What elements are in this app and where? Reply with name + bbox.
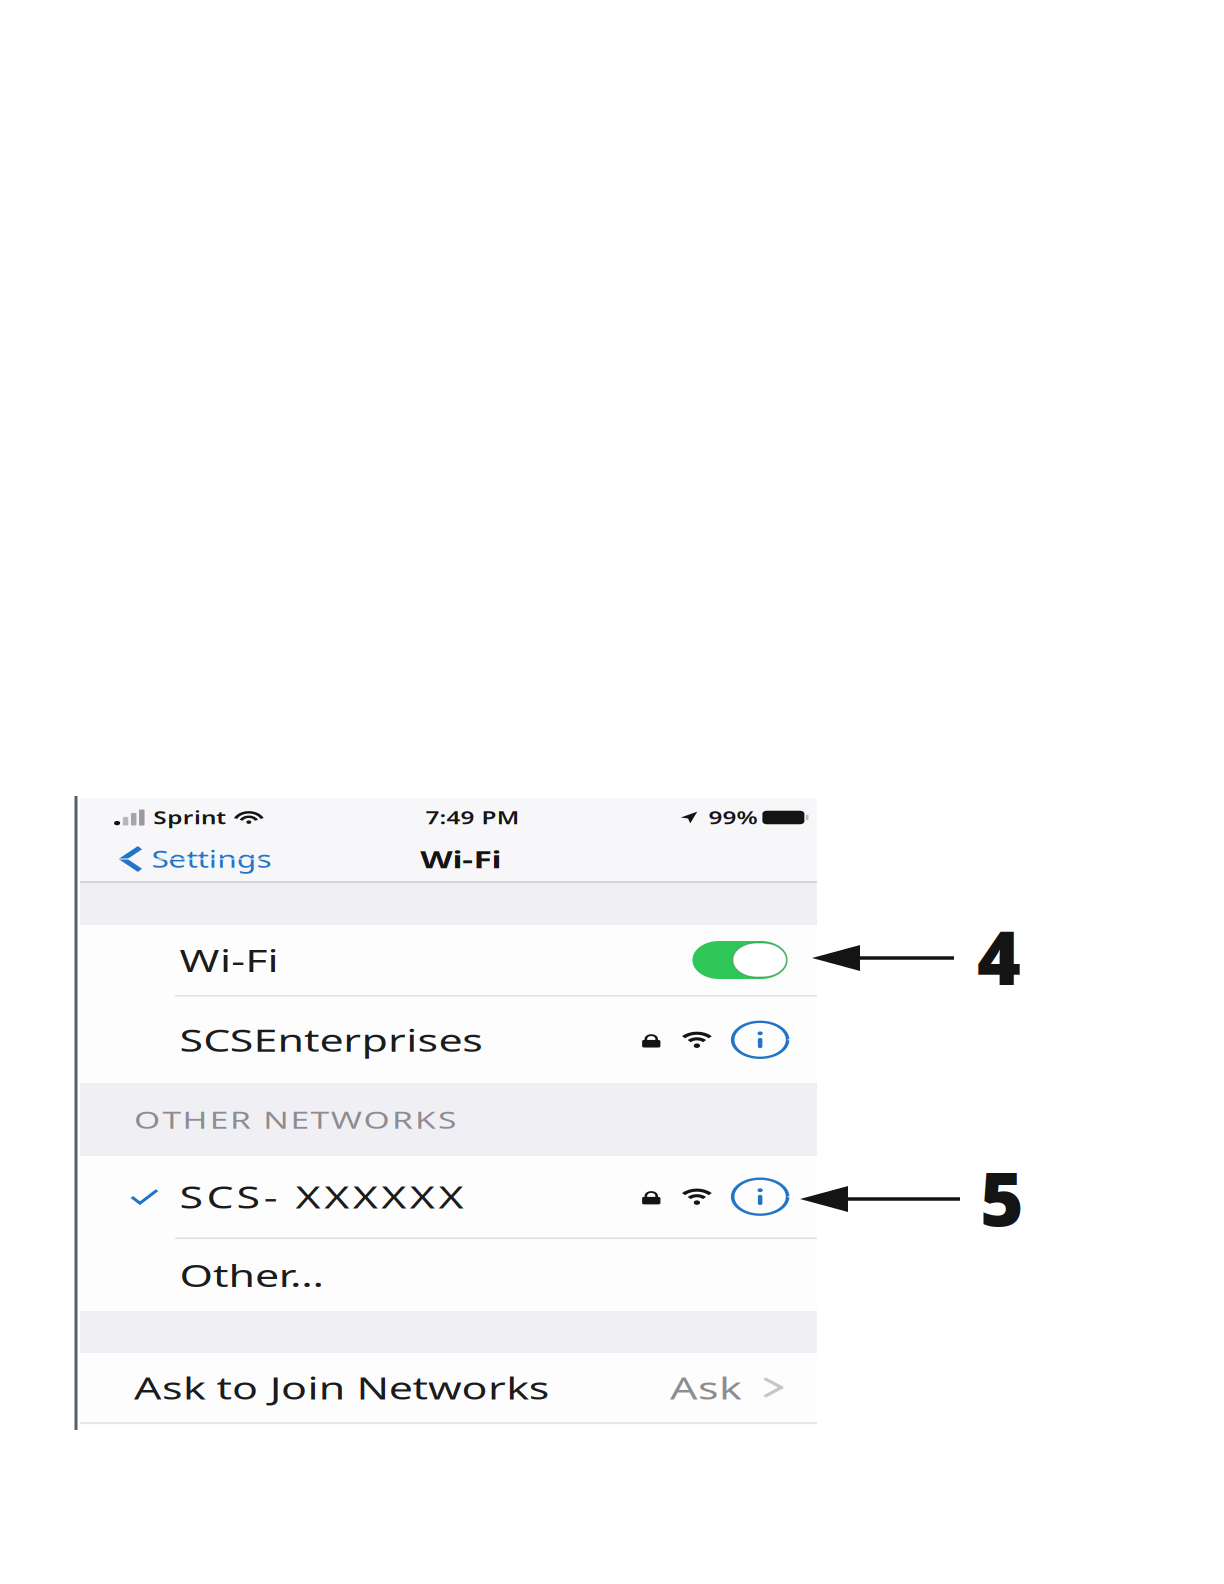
staticText: Sprint: [132, 806, 184, 829]
staticText: R: [187, 1104, 202, 1135]
staticText: p: [281, 1019, 300, 1060]
staticText: T: [139, 1104, 152, 1135]
staticText: i: [313, 1019, 321, 1060]
staticText: 4: [977, 906, 1021, 1006]
staticText: 5: [980, 1147, 1024, 1247]
staticText: X: [295, 1176, 313, 1217]
staticText: [203, 1104, 209, 1135]
staticText: X: [254, 1176, 272, 1217]
staticText: E: [173, 1104, 186, 1135]
button[interactable]: S: [80, 1156, 606, 1237]
button[interactable]: Other...: [80, 1239, 606, 1311]
staticText: r: [300, 1019, 313, 1060]
staticText: N: [211, 1104, 229, 1135]
staticText: O: [118, 1104, 137, 1135]
staticText: r: [268, 1019, 281, 1060]
staticText: S: [187, 1019, 204, 1060]
staticText: T: [245, 1104, 258, 1135]
button[interactable]: Settings: [80, 837, 223, 881]
staticText: Ask to Join Networks: [118, 1367, 415, 1408]
staticText: Settings: [131, 844, 217, 874]
staticText: X: [234, 1176, 252, 1217]
staticText: s: [353, 1019, 368, 1060]
staticText: t: [240, 1019, 251, 1060]
staticText: C: [168, 1019, 187, 1060]
staticText: e: [251, 1019, 268, 1060]
staticText: K: [319, 1104, 334, 1135]
staticText: Other...: [151, 1255, 254, 1295]
staticText: R: [303, 1104, 318, 1135]
staticText: H: [153, 1104, 171, 1135]
staticText: X: [336, 1176, 354, 1217]
staticText: s: [321, 1019, 336, 1060]
button[interactable]: Wi-Fi: [80, 925, 606, 995]
button[interactable]: Ask to Join Networks: [80, 1353, 606, 1422]
staticText: X: [275, 1176, 293, 1217]
staticText: Ask: [501, 1367, 552, 1408]
staticText: W: [259, 1104, 281, 1135]
staticText: -: [211, 1176, 221, 1217]
staticText: E: [204, 1019, 221, 1060]
staticText: Wi-Fi: [151, 940, 222, 980]
staticText: S: [192, 1176, 209, 1217]
button[interactable]: S: [80, 997, 606, 1083]
staticText: n: [221, 1019, 240, 1060]
staticText: e: [336, 1019, 353, 1060]
staticText: E: [230, 1104, 243, 1135]
staticText: X: [316, 1176, 334, 1217]
staticText: [224, 1176, 232, 1217]
staticText: O: [282, 1104, 301, 1135]
staticText: C: [170, 1176, 189, 1217]
staticText: S: [336, 1104, 349, 1135]
staticText: S: [151, 1176, 168, 1217]
